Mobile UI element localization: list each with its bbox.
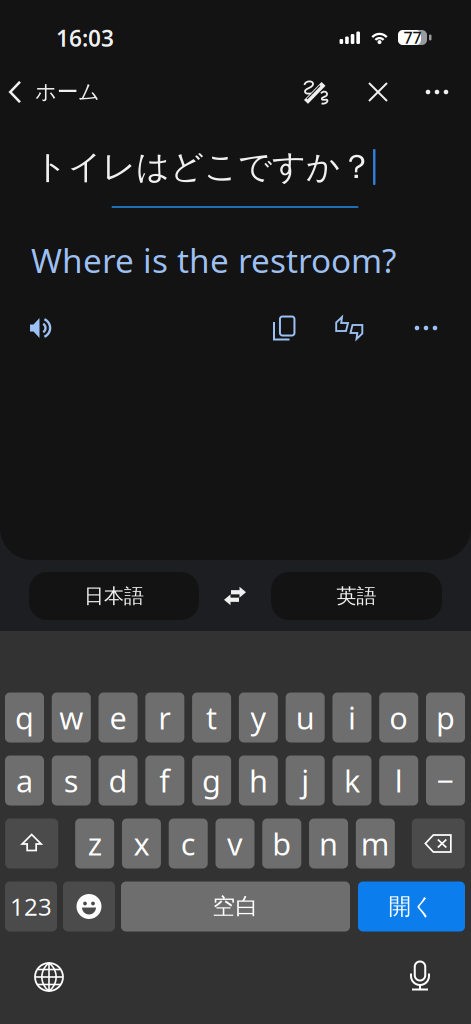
button[interactable]: k bbox=[332, 755, 371, 805]
staticText: a bbox=[16, 760, 33, 801]
button[interactable]: 英語 bbox=[271, 572, 442, 620]
staticText: b bbox=[272, 823, 291, 864]
staticText: 開く bbox=[388, 893, 434, 920]
staticText: z bbox=[88, 823, 102, 864]
staticText: 英語 bbox=[336, 584, 376, 608]
button[interactable]: b bbox=[262, 818, 301, 868]
staticText: 123 bbox=[10, 891, 52, 922]
button[interactable]: Copy translation bbox=[266, 308, 304, 347]
button[interactable]: q bbox=[5, 692, 44, 742]
staticText: l bbox=[395, 760, 403, 801]
button[interactable]: z bbox=[75, 818, 114, 868]
button[interactable]: s bbox=[52, 755, 91, 805]
button[interactable]: o bbox=[379, 692, 418, 742]
staticText: 77 bbox=[403, 27, 421, 48]
button[interactable]: 123 bbox=[5, 881, 57, 931]
button[interactable]: Next keyboard bbox=[25, 953, 73, 1001]
staticText: r bbox=[158, 697, 171, 738]
button[interactable]: r bbox=[145, 692, 184, 742]
button[interactable]: g bbox=[192, 755, 231, 805]
button[interactable]: y bbox=[239, 692, 278, 742]
staticText: q bbox=[15, 697, 34, 738]
staticText: 16:03 bbox=[56, 23, 114, 53]
button[interactable]: c bbox=[169, 818, 208, 868]
staticText: − bbox=[436, 760, 454, 801]
button[interactable]: m bbox=[356, 818, 395, 868]
staticText: n bbox=[319, 823, 338, 864]
button[interactable]: Dictate bbox=[398, 952, 442, 1002]
button[interactable]: p bbox=[426, 692, 465, 742]
button[interactable]: l bbox=[379, 755, 418, 805]
staticText: x bbox=[133, 823, 149, 864]
staticText: p bbox=[436, 697, 455, 738]
button[interactable]: t bbox=[192, 692, 231, 742]
button[interactable]: Swap languages bbox=[213, 576, 257, 616]
button[interactable]: d bbox=[99, 755, 138, 805]
button[interactable]: w bbox=[52, 692, 91, 742]
staticText: Where is the restroom? bbox=[31, 238, 396, 282]
button[interactable]: u bbox=[286, 692, 325, 742]
button[interactable]: − bbox=[426, 755, 465, 805]
staticText: m bbox=[361, 823, 390, 864]
button[interactable]: x bbox=[122, 818, 161, 868]
button[interactable]: 開く bbox=[358, 881, 465, 931]
staticText: g bbox=[202, 760, 221, 801]
button[interactable]: More actions bbox=[406, 317, 446, 339]
button[interactable]: e bbox=[99, 692, 138, 742]
button[interactable]: 日本語 bbox=[29, 572, 199, 620]
button[interactable]: 空白 bbox=[121, 881, 350, 931]
staticText: 日本語 bbox=[84, 584, 144, 608]
button[interactable]: Delete bbox=[412, 818, 465, 868]
staticText: 空白 bbox=[212, 893, 258, 920]
button[interactable]: j bbox=[286, 755, 325, 805]
staticText: h bbox=[249, 760, 268, 801]
staticText: k bbox=[344, 760, 360, 801]
button[interactable]: f bbox=[145, 755, 184, 805]
staticText: y bbox=[250, 697, 266, 738]
button[interactable]: Close bbox=[358, 72, 398, 112]
staticText: s bbox=[64, 760, 79, 801]
button[interactable]: i bbox=[332, 692, 371, 742]
button[interactable]: n bbox=[309, 818, 348, 868]
button[interactable]: v bbox=[215, 818, 254, 868]
staticText: d bbox=[109, 760, 128, 801]
staticText: o bbox=[389, 697, 408, 738]
button[interactable]: Listen bbox=[22, 309, 61, 346]
staticText: ホーム bbox=[35, 79, 100, 105]
button[interactable]: Rate translation bbox=[328, 309, 370, 347]
button[interactable]: Handwriting input bbox=[295, 71, 337, 113]
staticText: f bbox=[159, 760, 170, 801]
button[interactable]: More options bbox=[417, 81, 457, 103]
button[interactable]: Shift bbox=[5, 818, 58, 868]
staticText: t bbox=[206, 697, 217, 738]
button[interactable]: ホーム bbox=[0, 68, 110, 116]
staticText: j bbox=[301, 760, 309, 801]
staticText: c bbox=[181, 823, 196, 864]
staticText: トイレはどこですか？ bbox=[34, 146, 373, 187]
staticText: i bbox=[348, 697, 356, 738]
button[interactable]: h bbox=[239, 755, 278, 805]
staticText: e bbox=[110, 697, 127, 738]
staticText: w bbox=[59, 697, 83, 738]
staticText: v bbox=[227, 823, 243, 864]
button[interactable]: Emoji keyboard bbox=[63, 881, 115, 931]
staticText: u bbox=[296, 697, 315, 738]
button[interactable]: a bbox=[5, 755, 44, 805]
